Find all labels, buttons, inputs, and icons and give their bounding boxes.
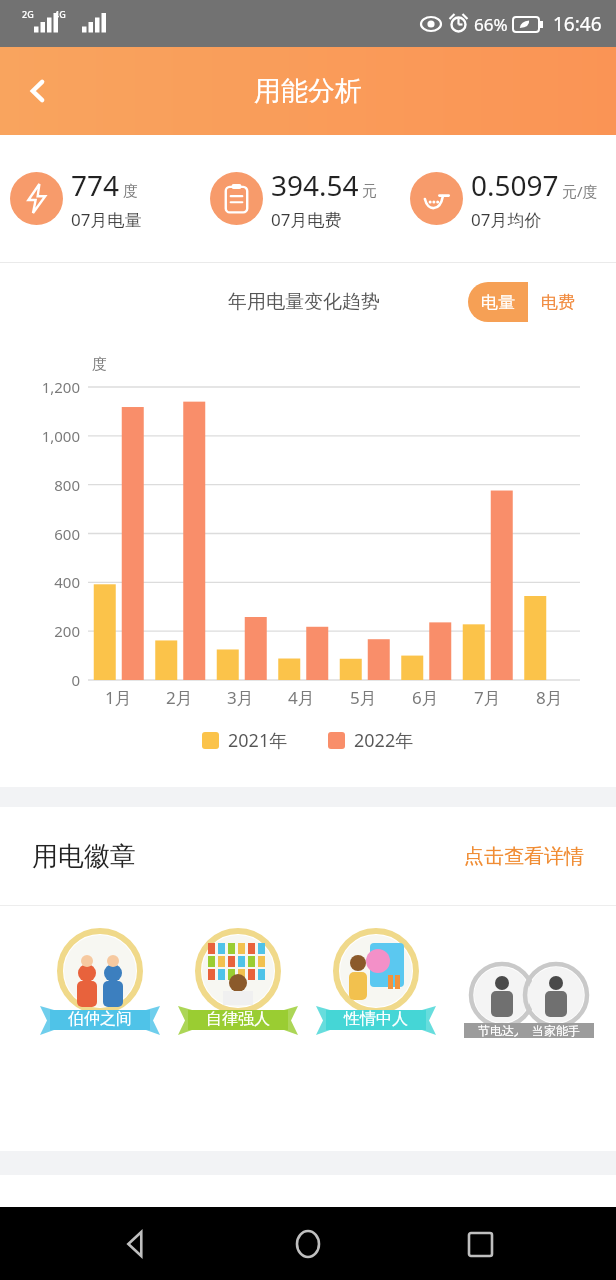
staticText: 8月: [536, 686, 563, 709]
staticText: 4月: [288, 686, 315, 709]
staticText: 3月: [227, 686, 254, 709]
staticText: 自律强人: [206, 1009, 270, 1029]
button[interactable]: Back: [100, 1208, 172, 1280]
staticText: 性情中人: [344, 1009, 408, 1029]
staticText: 07月电量: [71, 208, 142, 231]
button[interactable]: 电量: [468, 282, 528, 322]
staticText: 度: [123, 182, 138, 201]
staticText: 1月: [105, 686, 132, 709]
staticText: 7月: [474, 686, 501, 709]
staticText: 07月均价: [471, 208, 542, 231]
staticText: 年用电量变化趋势: [228, 290, 380, 314]
staticText: 用电徽章: [32, 840, 136, 873]
staticText: 0: [71, 670, 80, 690]
staticText: 电费: [541, 292, 575, 313]
staticText: 点击查看详情: [464, 844, 584, 869]
staticText: 电量: [481, 292, 515, 313]
staticText: 用能分析: [254, 74, 362, 108]
staticText: 394.54: [271, 166, 359, 204]
staticText: 1,200: [41, 377, 80, 397]
staticText: 伯仲之间: [68, 1009, 132, 1029]
staticText: 16:46: [553, 11, 602, 37]
staticText: 600: [54, 524, 80, 544]
staticText: 5月: [350, 686, 377, 709]
button[interactable]: 394.54: [200, 166, 400, 231]
button[interactable]: 774: [0, 166, 200, 231]
staticText: 元: [362, 182, 377, 201]
staticText: 2月: [166, 686, 193, 709]
button[interactable]: 伯仲之间: [40, 928, 160, 1036]
button[interactable]: 0.5097: [400, 166, 616, 231]
staticText: 4G: [54, 8, 66, 20]
staticText: 07月电费: [271, 208, 342, 231]
staticText: 2021年: [228, 728, 288, 753]
button[interactable]: 当家能手: [512, 962, 600, 1042]
staticText: 2G: [22, 8, 34, 20]
button[interactable]: 电费: [528, 282, 588, 322]
button[interactable]: Home: [272, 1208, 344, 1280]
staticText: 1,000: [41, 426, 80, 446]
button[interactable]: 节电达人: [458, 962, 546, 1042]
staticText: 元/度: [562, 181, 598, 201]
staticText: 0.5097: [471, 166, 559, 204]
staticText: 度: [92, 355, 107, 374]
button[interactable]: 点击查看详情: [464, 844, 584, 869]
staticText: 节电达人: [478, 1023, 526, 1038]
button[interactable]: 自律强人: [178, 928, 298, 1036]
staticText: 2022年: [354, 728, 414, 753]
staticText: 当家能手: [532, 1023, 580, 1038]
staticText: 800: [54, 475, 80, 495]
staticText: 66%: [474, 13, 508, 36]
staticText: 774: [71, 166, 120, 204]
button[interactable]: Recent apps: [444, 1208, 516, 1280]
button[interactable]: Back: [10, 63, 66, 119]
staticText: 6月: [412, 686, 439, 709]
staticText: 200: [54, 621, 80, 641]
staticText: 400: [54, 572, 80, 592]
button[interactable]: 性情中人: [316, 928, 436, 1036]
